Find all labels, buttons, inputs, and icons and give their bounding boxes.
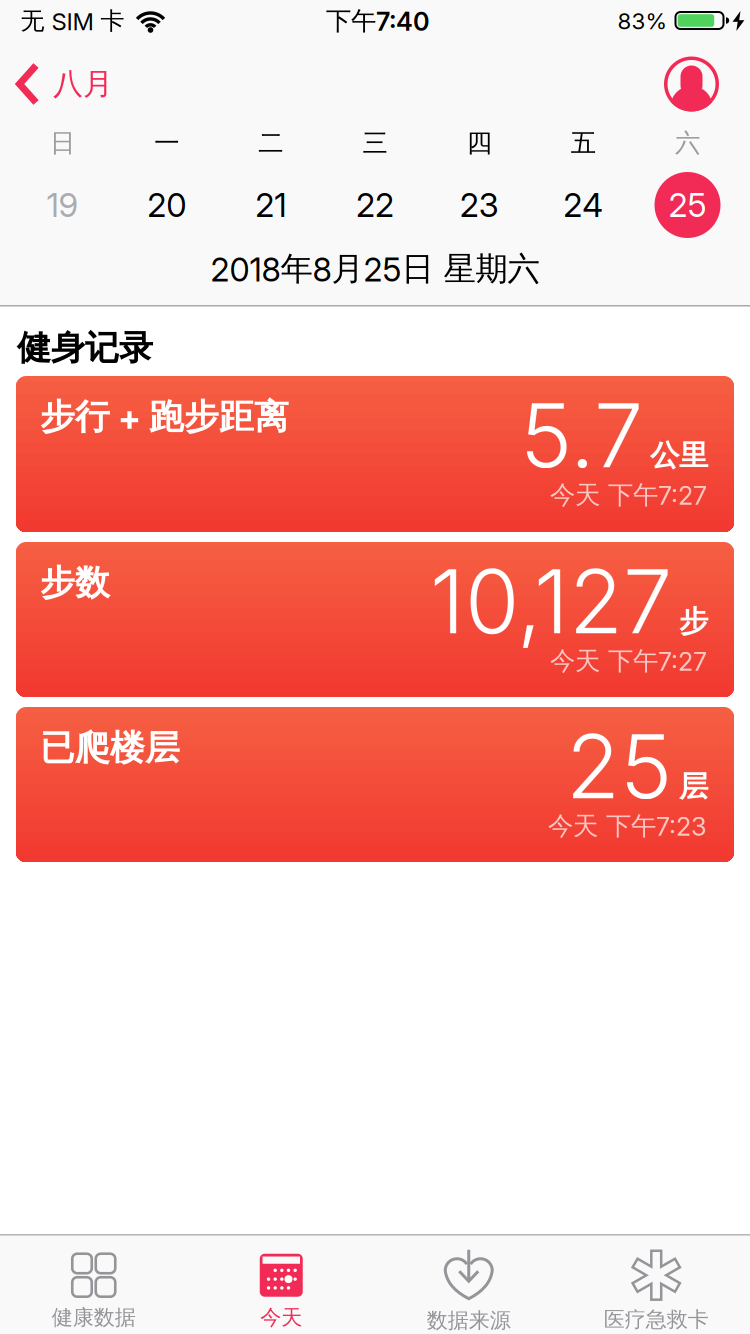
staticText: 四 — [467, 127, 492, 159]
staticText: 日 — [50, 127, 75, 159]
staticText: 22 — [356, 185, 394, 225]
staticText: 20 — [147, 185, 186, 225]
staticText: 5.7 — [520, 382, 643, 488]
staticText: 10,127 — [430, 548, 672, 654]
button[interactable]: 医疗急救卡 — [562, 1234, 750, 1334]
staticText: 25 — [668, 185, 706, 225]
staticText: 五 — [571, 127, 596, 159]
button[interactable]: 已爬楼层 — [16, 707, 734, 862]
button[interactable]: 21 — [219, 172, 323, 238]
staticText: 二 — [258, 127, 283, 159]
staticText: 2018年8月25日 星期六 — [210, 249, 539, 289]
staticText: 今天 下午7:27 — [550, 479, 707, 511]
button[interactable]: 八月 — [15, 62, 113, 106]
staticText: 21 — [255, 185, 286, 225]
button[interactable]: 23 — [427, 172, 531, 238]
staticText: 层 — [679, 768, 708, 805]
button[interactable]: 25 — [635, 172, 739, 238]
button[interactable]: 20 — [115, 172, 219, 238]
staticText: 24 — [563, 185, 603, 225]
staticText: 今天 下午7:23 — [548, 810, 707, 842]
button[interactable]: 24 — [531, 172, 635, 238]
staticText: 公里 — [650, 437, 708, 474]
staticText: 步数 — [40, 561, 110, 605]
button[interactable]: 今天 — [187, 1234, 375, 1334]
button[interactable]: 数据来源 — [375, 1234, 562, 1334]
staticText: 健身记录 — [17, 327, 153, 369]
button[interactable]: 步数 — [16, 542, 734, 697]
staticText: 19 — [46, 185, 78, 225]
button[interactable]: 22 — [323, 172, 427, 238]
staticText: 今天 下午7:27 — [550, 645, 707, 677]
staticText: 已爬楼层 — [40, 726, 180, 770]
staticText: 下午7:40 — [326, 5, 430, 37]
staticText: 健康数据 — [52, 1304, 136, 1331]
staticText: 三 — [362, 127, 387, 159]
staticText: 今天 — [260, 1304, 302, 1331]
staticText: 八月 — [53, 65, 113, 103]
staticText: 83% — [617, 7, 667, 34]
staticText: 无 SIM 卡 — [20, 6, 124, 36]
staticText: 数据来源 — [427, 1307, 511, 1334]
staticText: 一 — [154, 127, 179, 159]
staticText: 步 — [679, 603, 708, 640]
staticText: 步行 + 跑步距离 — [40, 395, 289, 439]
staticText: 23 — [460, 185, 499, 225]
button[interactable]: 19 — [10, 172, 114, 238]
staticText: 六 — [675, 127, 700, 159]
button[interactable]: 步行 + 跑步距离 — [16, 376, 734, 532]
button[interactable] — [664, 56, 719, 111]
staticText: 医疗急救卡 — [604, 1306, 709, 1333]
staticText: 25 — [566, 713, 672, 819]
button[interactable]: 健康数据 — [0, 1234, 187, 1334]
